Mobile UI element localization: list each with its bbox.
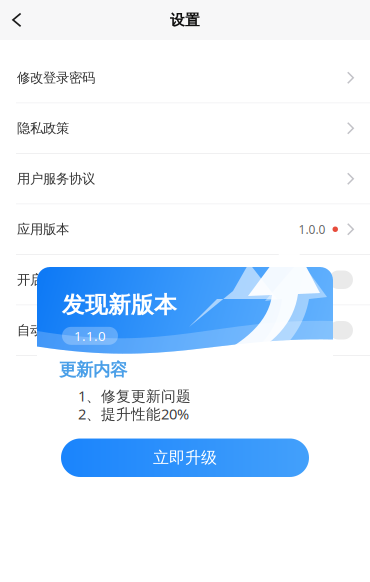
button[interactable]: Back (0, 0, 36, 39)
staticText: 应用版本 (17, 221, 69, 237)
staticText: 用户服务协议 (17, 171, 95, 187)
staticText: 1、修复更新问题 (78, 386, 191, 405)
staticText: 自动更新 (17, 322, 69, 338)
staticText: 2、提升性能20% (78, 404, 189, 423)
button[interactable]: 自动更新 (0, 305, 370, 355)
staticText: 设置 (170, 11, 200, 29)
button[interactable]: 应用版本 (0, 204, 370, 254)
staticText: 更新内容 (59, 359, 127, 380)
button[interactable]: 开启推送 (0, 255, 370, 304)
button[interactable]: 隐私政策 (0, 103, 370, 153)
staticText: 1.1.0 (74, 327, 106, 345)
staticText: 开启推送 (17, 272, 69, 288)
button[interactable]: 用户服务协议 (0, 154, 370, 203)
staticText: 修改登录密码 (17, 70, 95, 86)
staticText: 发现新版本 (62, 291, 177, 319)
staticText: 1.0.0 (298, 221, 325, 237)
staticText: 立即升级 (153, 448, 217, 468)
button[interactable]: 立即升级 (61, 438, 309, 477)
button[interactable]: 修改登录密码 (0, 53, 370, 102)
staticText: 隐私政策 (17, 120, 69, 136)
